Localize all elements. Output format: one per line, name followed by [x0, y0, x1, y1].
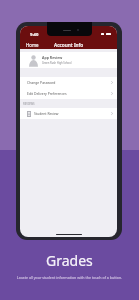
staticText: Edit Delivery Preferences [27, 91, 67, 96]
staticText: REVIEWS [23, 102, 35, 106]
button[interactable]: Change Password [20, 77, 117, 88]
staticText: Account Info [54, 42, 84, 49]
staticText: 9:40 [30, 32, 39, 38]
button[interactable]: Home [26, 42, 39, 48]
staticText: Green Rush High School [42, 61, 72, 65]
staticText: App Review [42, 55, 63, 60]
button[interactable]: Student Review [20, 108, 117, 119]
staticText: Change Password [27, 80, 56, 85]
staticText: Locate all your student information with… [0, 275, 139, 280]
button[interactable]: Edit Delivery Preferences [20, 88, 117, 99]
staticText: Student Review [34, 111, 59, 116]
staticText: Grades [46, 251, 93, 270]
button[interactable]: App Review [20, 52, 117, 68]
